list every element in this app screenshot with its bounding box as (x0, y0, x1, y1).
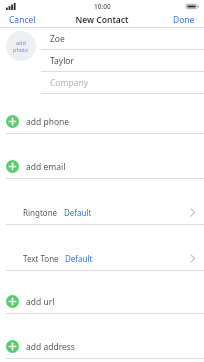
staticText: Ringtone (23, 207, 58, 218)
staticText: add phone (26, 116, 70, 128)
button[interactable]: Done (164, 12, 204, 27)
staticText: Done (173, 14, 195, 26)
button[interactable]: Taylor (41, 50, 204, 71)
button[interactable]: Ringtone (0, 201, 204, 224)
button[interactable]: add email (0, 155, 204, 178)
staticText: Default (64, 207, 92, 218)
button[interactable]: add address (0, 335, 204, 358)
staticText: Zoe (50, 33, 65, 45)
staticText: Text Tone (23, 253, 59, 264)
staticText: Default (65, 253, 93, 264)
button[interactable]: Cancel (0, 12, 45, 27)
button[interactable]: Company (41, 72, 204, 93)
staticText: photo (13, 46, 29, 53)
button[interactable]: Text Tone (0, 247, 204, 270)
staticText: New Contact (75, 14, 129, 26)
button[interactable]: add url (0, 290, 204, 313)
staticText: 10:00 (94, 2, 111, 11)
staticText: add address (26, 341, 75, 353)
button[interactable]: add phone (0, 110, 204, 133)
staticText: Company (50, 77, 89, 89)
staticText: add url (26, 296, 55, 308)
staticText: Taylor (50, 55, 74, 67)
button[interactable]: add photo (6, 31, 36, 61)
staticText: Cancel (9, 14, 36, 26)
staticText: add (16, 39, 26, 46)
button[interactable]: Zoe (41, 28, 204, 49)
staticText: add email (26, 161, 66, 173)
